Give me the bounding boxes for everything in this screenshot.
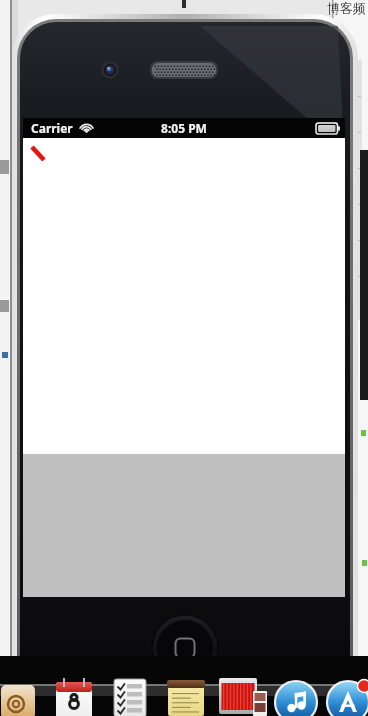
staticText: 8:05 PM [161, 120, 207, 136]
staticText: Carrier [31, 120, 73, 136]
button[interactable] [23, 138, 345, 454]
staticText: 博客频 [327, 0, 366, 16]
